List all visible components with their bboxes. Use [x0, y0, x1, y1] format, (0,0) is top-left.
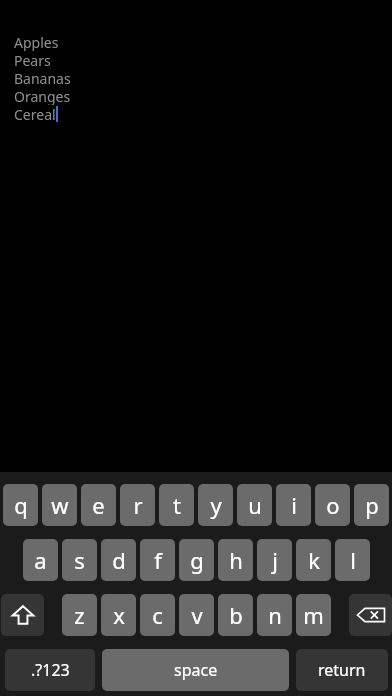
staticText: w [51, 490, 69, 520]
button[interactable]: n [257, 594, 292, 636]
button[interactable]: z [62, 594, 97, 636]
staticText: c [152, 600, 163, 630]
staticText: space [174, 659, 218, 681]
staticText: x [113, 600, 125, 630]
button[interactable]: i [276, 484, 311, 526]
button[interactable]: .?123 [5, 649, 95, 691]
staticText: z [74, 600, 85, 630]
staticText: f [154, 545, 162, 575]
staticText: m [303, 600, 324, 630]
staticText: a [34, 545, 47, 575]
staticText: Oranges [14, 87, 71, 105]
staticText: Bananas [14, 69, 71, 87]
staticText: q [14, 490, 28, 520]
staticText: t [173, 490, 181, 520]
button[interactable]: c [140, 594, 175, 636]
button[interactable]: space [102, 649, 289, 691]
button[interactable]: d [101, 539, 136, 581]
button[interactable]: o [315, 484, 350, 526]
button[interactable]: b [218, 594, 253, 636]
button[interactable]: l [335, 539, 370, 581]
staticText: n [268, 600, 282, 630]
button[interactable]: x [101, 594, 136, 636]
staticText: p [365, 490, 379, 520]
button[interactable]: j [257, 539, 292, 581]
button[interactable]: Shift [1, 594, 44, 636]
staticText: .?123 [31, 659, 70, 681]
button[interactable]: r [120, 484, 155, 526]
button[interactable]: p [354, 484, 389, 526]
button[interactable]: h [218, 539, 253, 581]
staticText: u [248, 490, 262, 520]
staticText: b [229, 600, 243, 630]
button[interactable]: e [81, 484, 116, 526]
button[interactable]: u [237, 484, 272, 526]
staticText: o [326, 490, 340, 520]
staticText: d [112, 545, 126, 575]
staticText: e [92, 490, 105, 520]
staticText: Cereal [14, 105, 56, 123]
staticText: g [190, 545, 204, 575]
button[interactable]: g [179, 539, 214, 581]
button[interactable]: s [62, 539, 97, 581]
button[interactable]: v [179, 594, 214, 636]
button[interactable]: a [23, 539, 58, 581]
staticText: v [191, 600, 203, 630]
staticText: j [272, 545, 278, 575]
button[interactable]: t [159, 484, 194, 526]
staticText: return [318, 659, 366, 681]
staticText: s [74, 545, 85, 575]
button[interactable]: q [3, 484, 38, 526]
button[interactable]: return [296, 649, 388, 691]
staticText: y [210, 490, 222, 520]
staticText: i [291, 490, 297, 520]
button[interactable]: k [296, 539, 331, 581]
button[interactable]: m [296, 594, 331, 636]
button[interactable]: Backspace [349, 594, 392, 636]
staticText: r [133, 490, 143, 520]
staticText: l [350, 545, 356, 575]
staticText: k [308, 545, 320, 575]
staticText: Apples [14, 33, 59, 51]
staticText: Pears [14, 51, 51, 69]
button[interactable]: f [140, 539, 175, 581]
button[interactable]: w [42, 484, 77, 526]
staticText: h [229, 545, 243, 575]
button[interactable]: y [198, 484, 233, 526]
